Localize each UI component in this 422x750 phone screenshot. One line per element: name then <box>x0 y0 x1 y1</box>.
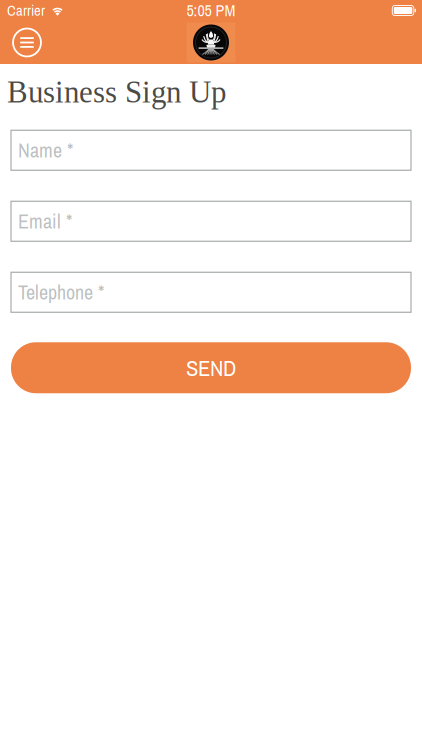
staticText: Email * <box>18 208 72 235</box>
staticText: Name * <box>18 137 73 164</box>
button[interactable]: Name * <box>11 130 411 170</box>
button[interactable]: Email * <box>11 201 411 241</box>
staticText: Carrier <box>7 1 45 20</box>
staticText: Business Sign Up <box>7 75 226 109</box>
staticText: SEND <box>186 352 236 383</box>
staticText: Telephone * <box>18 279 104 306</box>
button[interactable]: SEND <box>11 342 411 393</box>
button[interactable]: Menu <box>8 23 46 61</box>
staticText: 5:05 PM <box>186 0 235 21</box>
button[interactable]: Telephone * <box>11 272 411 312</box>
